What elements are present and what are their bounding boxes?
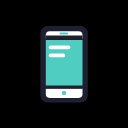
- button[interactable]: Smartphone: [40, 26, 88, 103]
